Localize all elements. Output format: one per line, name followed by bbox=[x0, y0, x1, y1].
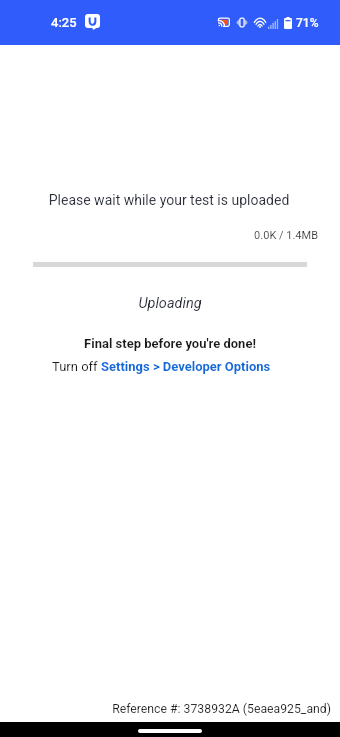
button[interactable]: Home bbox=[138, 729, 202, 733]
button[interactable]: Open Settings > Developer Options bbox=[52, 359, 271, 374]
staticText: Uploading bbox=[0, 295, 340, 312]
button[interactable]: Uber notification bbox=[85, 14, 100, 30]
staticText: Please wait while your test is uploaded bbox=[0, 192, 339, 208]
staticText: 4:25 bbox=[51, 15, 77, 30]
staticText: Reference #: 3738932A (5eaea925_and) bbox=[0, 702, 331, 716]
staticText: Final step before you're done! bbox=[0, 336, 340, 351]
staticText: Settings > Developer Options bbox=[101, 359, 271, 374]
staticText: 71% bbox=[296, 16, 319, 30]
staticText: 0.0K / 1.4MB bbox=[0, 229, 318, 242]
staticText: Turn off bbox=[52, 359, 101, 374]
